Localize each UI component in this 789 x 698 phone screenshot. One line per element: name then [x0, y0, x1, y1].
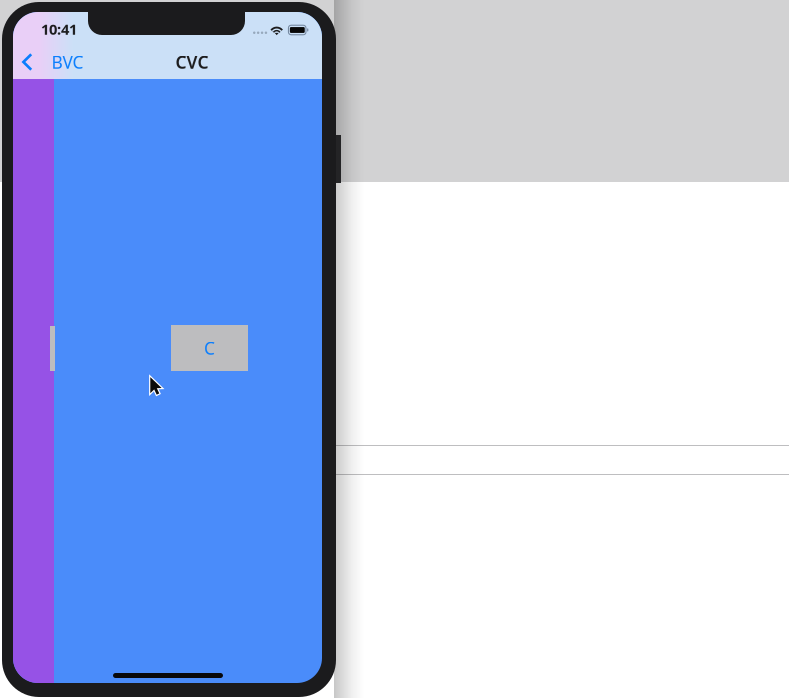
staticText: C — [204, 336, 215, 359]
button[interactable]: C — [171, 325, 248, 371]
staticText: CVC — [175, 50, 208, 73]
staticText: BVC — [52, 50, 84, 73]
button[interactable]: BVC — [13, 47, 113, 77]
staticText: 10:41 — [41, 19, 77, 39]
